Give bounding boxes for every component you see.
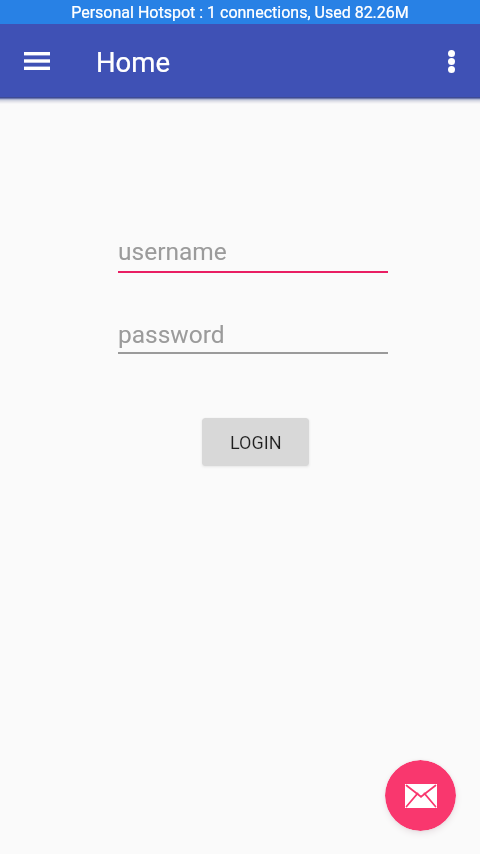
staticText: LOGIN — [230, 432, 282, 453]
staticText: password — [118, 320, 225, 349]
staticText: Home — [96, 46, 171, 78]
button[interactable]: Open navigation menu — [14, 38, 60, 84]
button[interactable]: password — [118, 320, 388, 354]
staticText: username — [118, 237, 227, 266]
button[interactable]: More options — [428, 38, 474, 84]
button[interactable]: username — [118, 237, 388, 273]
button[interactable]: Compose email — [385, 760, 456, 831]
staticText: Personal Hotspot : 1 connections, Used 8… — [71, 3, 409, 22]
button[interactable]: LOGIN — [202, 418, 309, 466]
